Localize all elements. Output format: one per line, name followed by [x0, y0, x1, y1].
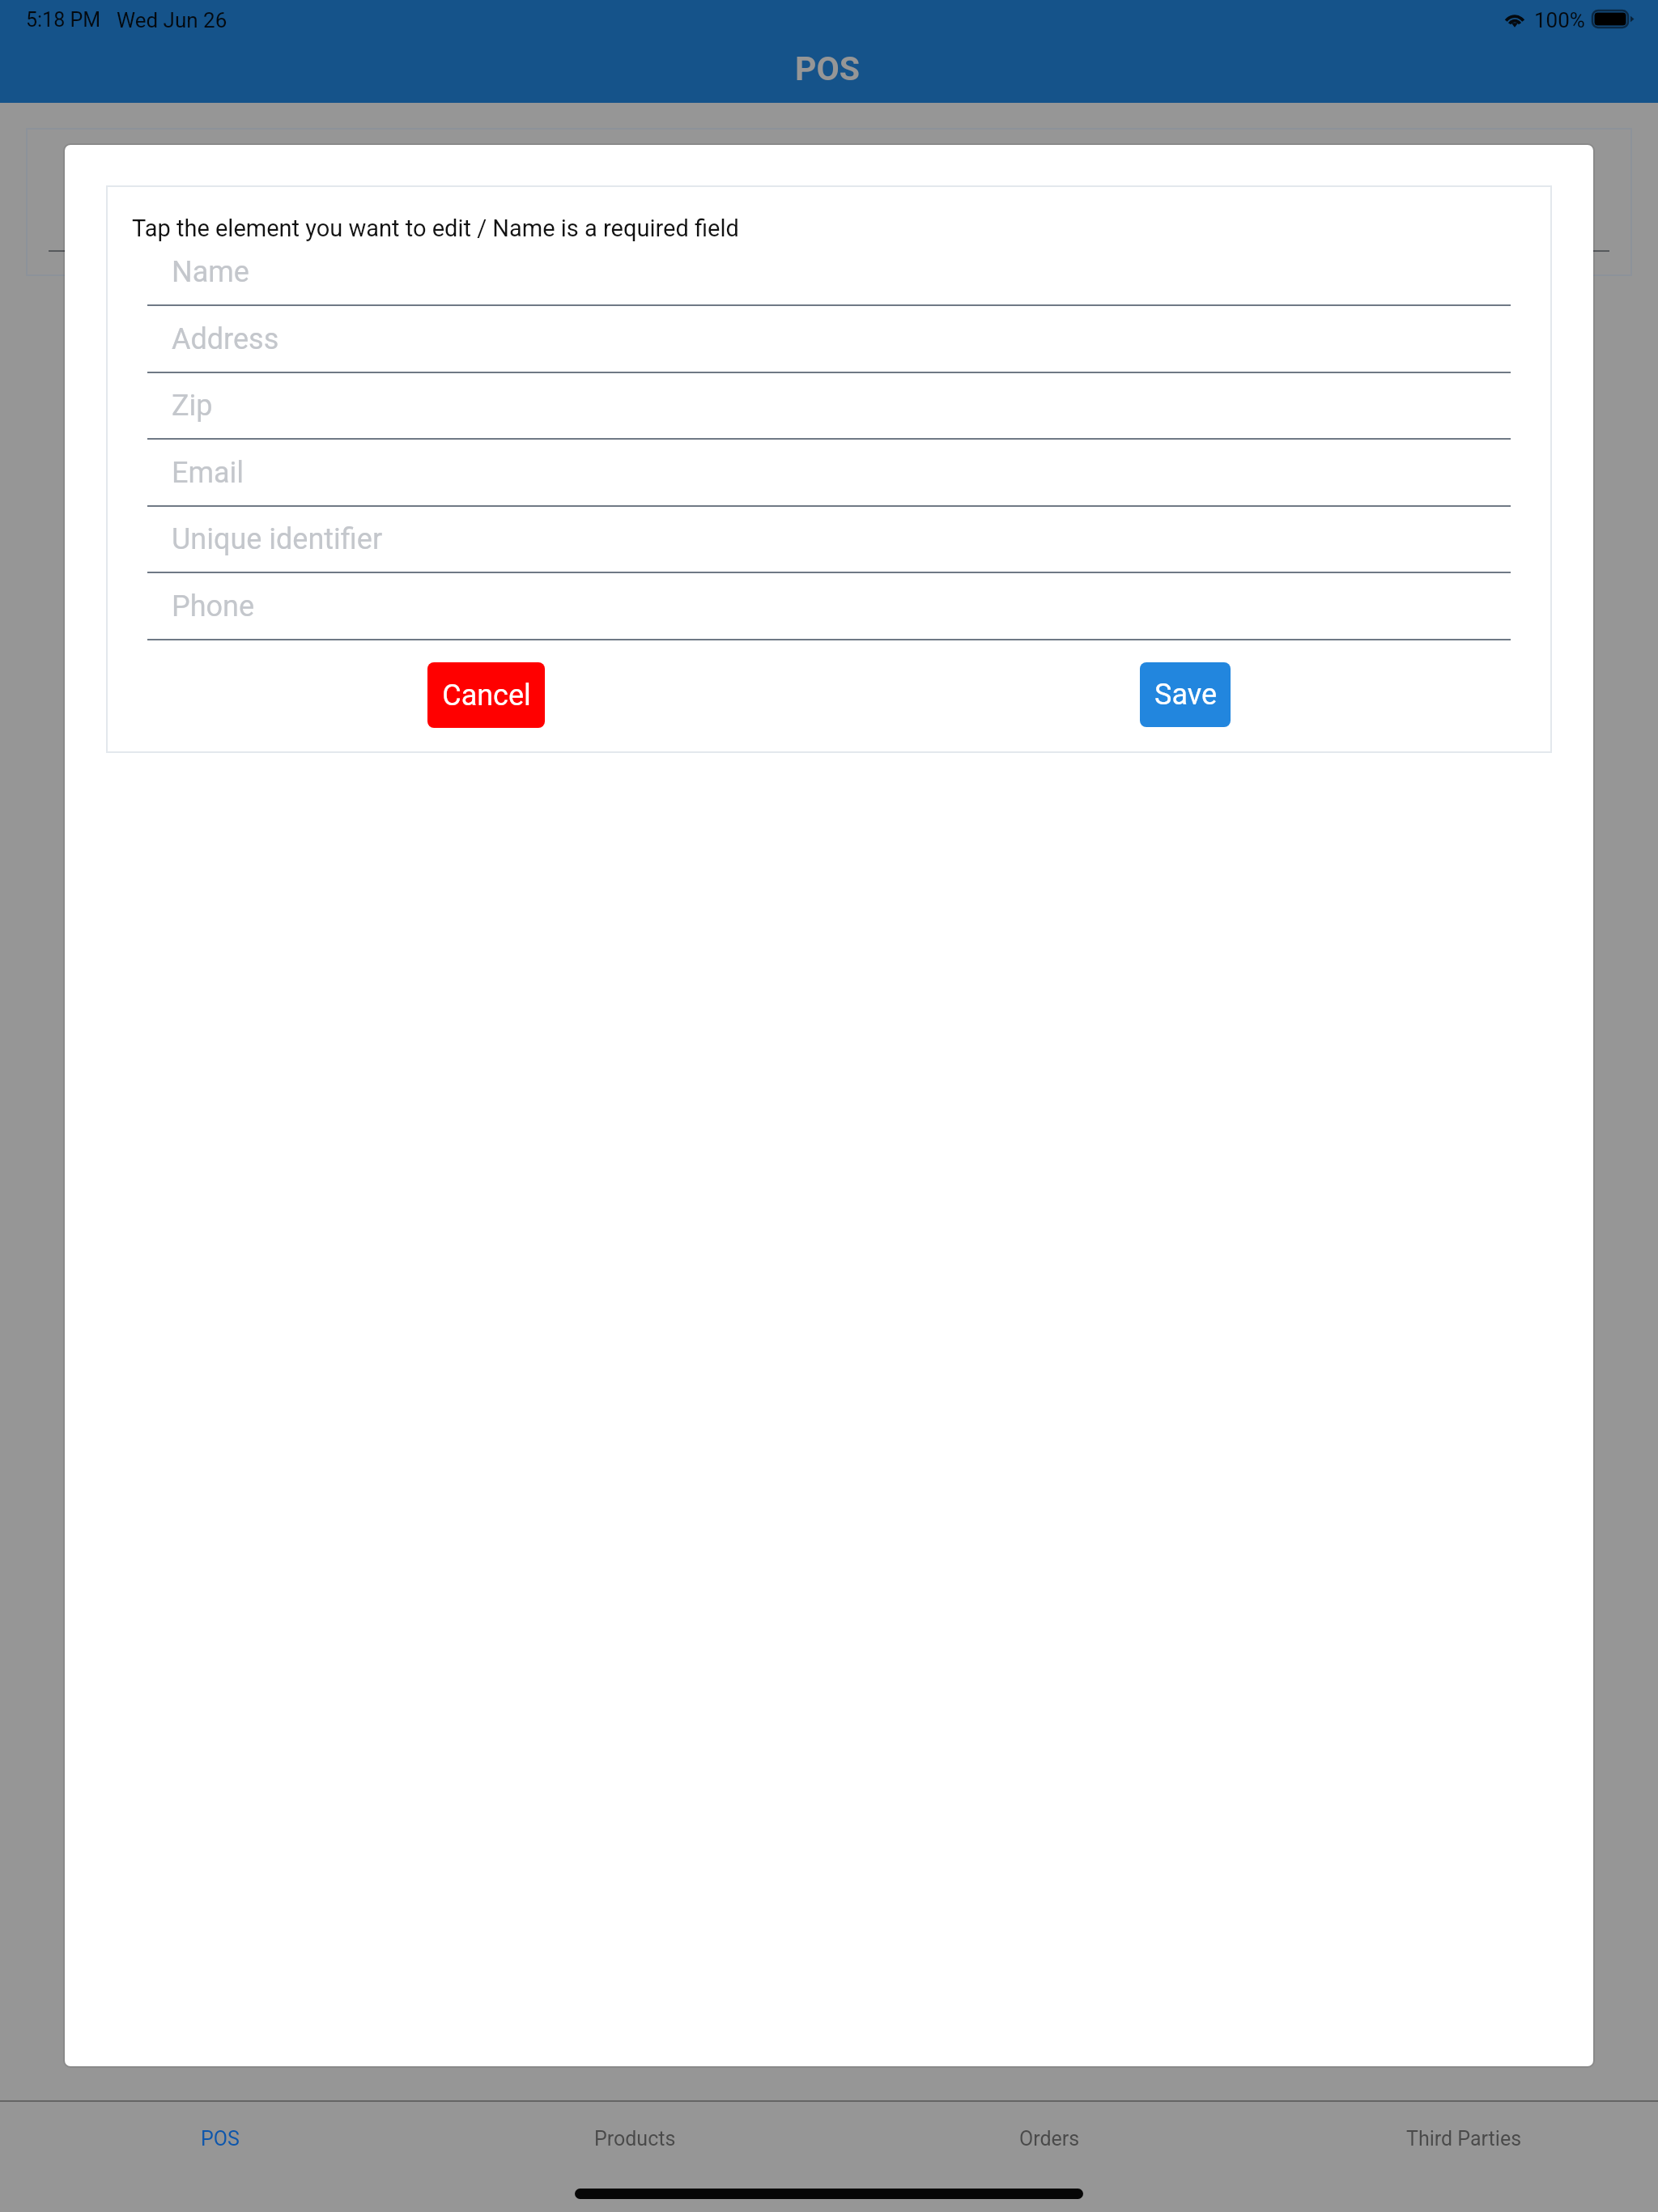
staticText: 5:18 PM	[26, 8, 101, 32]
other: Battery	[1592, 10, 1635, 28]
button[interactable]: POS	[13, 2102, 427, 2175]
staticText: Save	[1154, 678, 1217, 712]
button[interactable]: Save	[1140, 662, 1231, 727]
staticText: Products	[594, 2127, 676, 2150]
other: Wi-Fi	[1503, 11, 1527, 27]
staticText: Name	[172, 255, 249, 289]
button[interactable]: Products	[427, 2102, 842, 2175]
staticText: Zip	[172, 389, 213, 423]
staticText: Cancel	[442, 678, 531, 713]
button[interactable]: Unique identifier	[147, 513, 1511, 573]
staticText: Unique identifier	[172, 522, 383, 556]
staticText: Tap the element you want to edit / Name …	[132, 215, 739, 242]
button[interactable]: Third Parties	[1256, 2102, 1658, 2175]
button[interactable]: Phone	[147, 580, 1511, 640]
staticText: POS	[201, 2127, 240, 2150]
staticText: POS	[795, 49, 860, 88]
button[interactable]: Name	[147, 245, 1511, 306]
button[interactable]: Email	[147, 446, 1511, 507]
button[interactable]: Orders	[842, 2102, 1256, 2175]
button[interactable]: Zip	[147, 379, 1511, 440]
staticText: Address	[172, 322, 279, 356]
staticText: Orders	[1019, 2127, 1080, 2150]
button[interactable]: Cancel	[427, 662, 545, 728]
staticText: Third Parties	[1406, 2127, 1522, 2150]
staticText: Email	[172, 456, 244, 490]
staticText: Phone	[172, 589, 255, 623]
staticText: Wed Jun 26	[117, 8, 227, 32]
staticText: 100%	[1534, 8, 1585, 32]
button[interactable]: Address	[147, 313, 1511, 373]
